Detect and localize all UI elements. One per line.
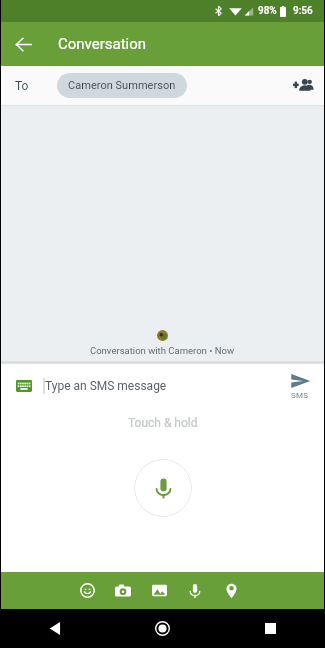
button[interactable]: Home — [108, 609, 216, 648]
button[interactable]: Camera — [105, 572, 141, 609]
staticText: Type an SMS message — [45, 379, 167, 393]
staticText: Touch & hold — [128, 416, 198, 430]
button[interactable]: Back — [1, 22, 45, 66]
staticText: SMS — [291, 391, 309, 400]
button[interactable]: Voice message — [177, 572, 213, 609]
button[interactable]: Location — [213, 572, 249, 609]
button[interactable]: Recents — [216, 609, 324, 648]
button[interactable]: Cameron Summerson — [57, 73, 187, 98]
staticText: 9:56 — [293, 5, 313, 17]
button[interactable]: Send SMS — [278, 365, 322, 407]
button[interactable]: Keyboard — [14, 376, 34, 396]
staticText: To — [15, 79, 29, 93]
staticText: Cameron Summerson — [68, 79, 176, 92]
button[interactable]: Back — [1, 609, 108, 648]
button[interactable]: Record voice message — [134, 459, 192, 517]
staticText: 98% — [258, 5, 277, 17]
staticText: Conversation with Cameron • Now — [90, 345, 235, 356]
staticText: Conversation — [58, 35, 147, 53]
button[interactable]: Emoji — [69, 572, 105, 609]
button[interactable]: Gallery — [141, 572, 177, 609]
button[interactable]: Add people — [280, 66, 324, 105]
